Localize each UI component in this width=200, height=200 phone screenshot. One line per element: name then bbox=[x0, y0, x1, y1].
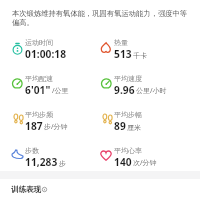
staticText: 训练表现 bbox=[11, 185, 41, 194]
staticText: 平均步幅 bbox=[114, 110, 142, 119]
staticText: /公里 bbox=[52, 86, 69, 96]
staticText: 运动时间 bbox=[25, 38, 53, 47]
staticText: 步 bbox=[59, 159, 66, 168]
staticText: 89 bbox=[114, 119, 126, 133]
staticText: 本次锻炼维持有氧体能，巩固有氧运动能力，强度中等 偏高。 bbox=[12, 9, 188, 27]
button[interactable]: 训练表现 bbox=[0, 180, 200, 198]
staticText: 11,283 bbox=[25, 155, 58, 169]
staticText: 热量 bbox=[114, 38, 128, 47]
staticText: 平均心率 bbox=[114, 146, 142, 155]
staticText: 平均速度 bbox=[114, 74, 142, 83]
staticText: 01:00:18 bbox=[25, 47, 67, 61]
staticText: 187 bbox=[25, 119, 43, 133]
staticText: 9.96 bbox=[114, 83, 135, 97]
staticText: 千卡 bbox=[133, 51, 147, 60]
staticText: 6'01" bbox=[25, 83, 51, 97]
staticText: 平均步频 bbox=[25, 110, 53, 119]
staticText: 公里/小时 bbox=[136, 86, 167, 96]
staticText: 步/分钟 bbox=[44, 122, 68, 132]
staticText: 厘米 bbox=[127, 123, 141, 132]
staticText: 次/分钟 bbox=[133, 158, 157, 168]
staticText: 513 bbox=[114, 47, 132, 61]
staticText: 平均配速 bbox=[25, 74, 53, 83]
staticText: 步数 bbox=[25, 146, 39, 155]
staticText: 140 bbox=[114, 155, 132, 169]
